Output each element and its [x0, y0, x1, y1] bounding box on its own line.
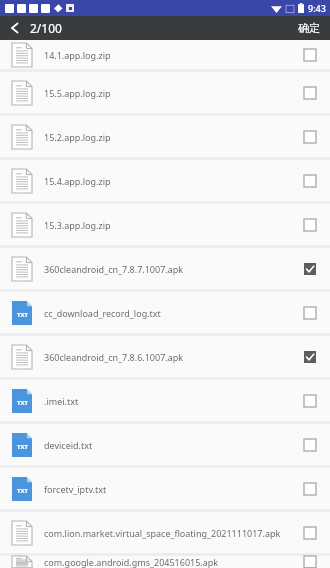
button[interactable]: Not selected — [302, 437, 318, 453]
staticText: 确定 — [298, 21, 320, 35]
other: Back — [10, 21, 20, 35]
staticText: 15.3.app.log.zip — [44, 219, 294, 231]
staticText: TXT — [17, 487, 28, 495]
button[interactable]: 确定 — [288, 17, 330, 39]
button[interactable]: TXT — [0, 468, 330, 509]
button[interactable]: Not selected — [302, 481, 318, 497]
staticText: 15.5.app.log.zip — [44, 87, 294, 99]
staticText: 2/100 — [30, 20, 62, 36]
button[interactable]: Not selected — [302, 129, 318, 145]
button[interactable]: TXT — [0, 292, 330, 333]
button[interactable]: 14.1.app.log.zip — [0, 40, 330, 69]
staticText: forcetv_iptv.txt — [44, 483, 294, 495]
button[interactable]: Selected — [302, 349, 318, 365]
button[interactable]: Not selected — [302, 556, 318, 568]
button[interactable]: 15.4.app.log.zip — [0, 160, 330, 201]
staticText: 360cleandroid_cn_7.8.7.1007.apk — [44, 263, 294, 275]
button[interactable]: TXT — [0, 424, 330, 465]
button[interactable]: Not selected — [302, 525, 318, 541]
button[interactable]: Not selected — [302, 393, 318, 409]
button[interactable]: Not selected — [302, 85, 318, 101]
button[interactable]: Back — [0, 20, 70, 36]
staticText: 15.4.app.log.zip — [44, 175, 294, 187]
button[interactable]: Not selected — [302, 305, 318, 321]
staticText: 360cleandroid_cn_7.8.6.1007.apk — [44, 351, 294, 363]
button[interactable]: com.lion.market.virtual_space_floating_2… — [0, 512, 330, 553]
staticText: 9:43 — [308, 2, 326, 14]
staticText: com.lion.market.virtual_space_floating_2… — [44, 527, 294, 539]
button[interactable]: com.google.android.gms_204516015.apk — [0, 556, 330, 568]
staticText: TXT — [17, 399, 28, 407]
button[interactable]: TXT — [0, 380, 330, 421]
button[interactable]: 360cleandroid_cn_7.8.6.1007.apk — [0, 336, 330, 377]
staticText: TXT — [17, 443, 28, 451]
staticText: .imei.txt — [44, 395, 294, 407]
staticText: com.google.android.gms_204516015.apk — [44, 556, 294, 568]
button[interactable]: Not selected — [302, 47, 318, 63]
staticText: deviceid.txt — [44, 439, 294, 451]
button[interactable]: 15.2.app.log.zip — [0, 116, 330, 157]
staticText: TXT — [17, 311, 28, 319]
button[interactable]: Selected — [302, 261, 318, 277]
staticText: cc_download_record_log.txt — [44, 307, 294, 319]
button[interactable]: Not selected — [302, 217, 318, 233]
button[interactable]: Not selected — [302, 173, 318, 189]
staticText: 14.1.app.log.zip — [44, 49, 294, 61]
button[interactable]: 360cleandroid_cn_7.8.7.1007.apk — [0, 248, 330, 289]
button[interactable]: 15.5.app.log.zip — [0, 72, 330, 113]
button[interactable]: 15.3.app.log.zip — [0, 204, 330, 245]
staticText: 15.2.app.log.zip — [44, 131, 294, 143]
